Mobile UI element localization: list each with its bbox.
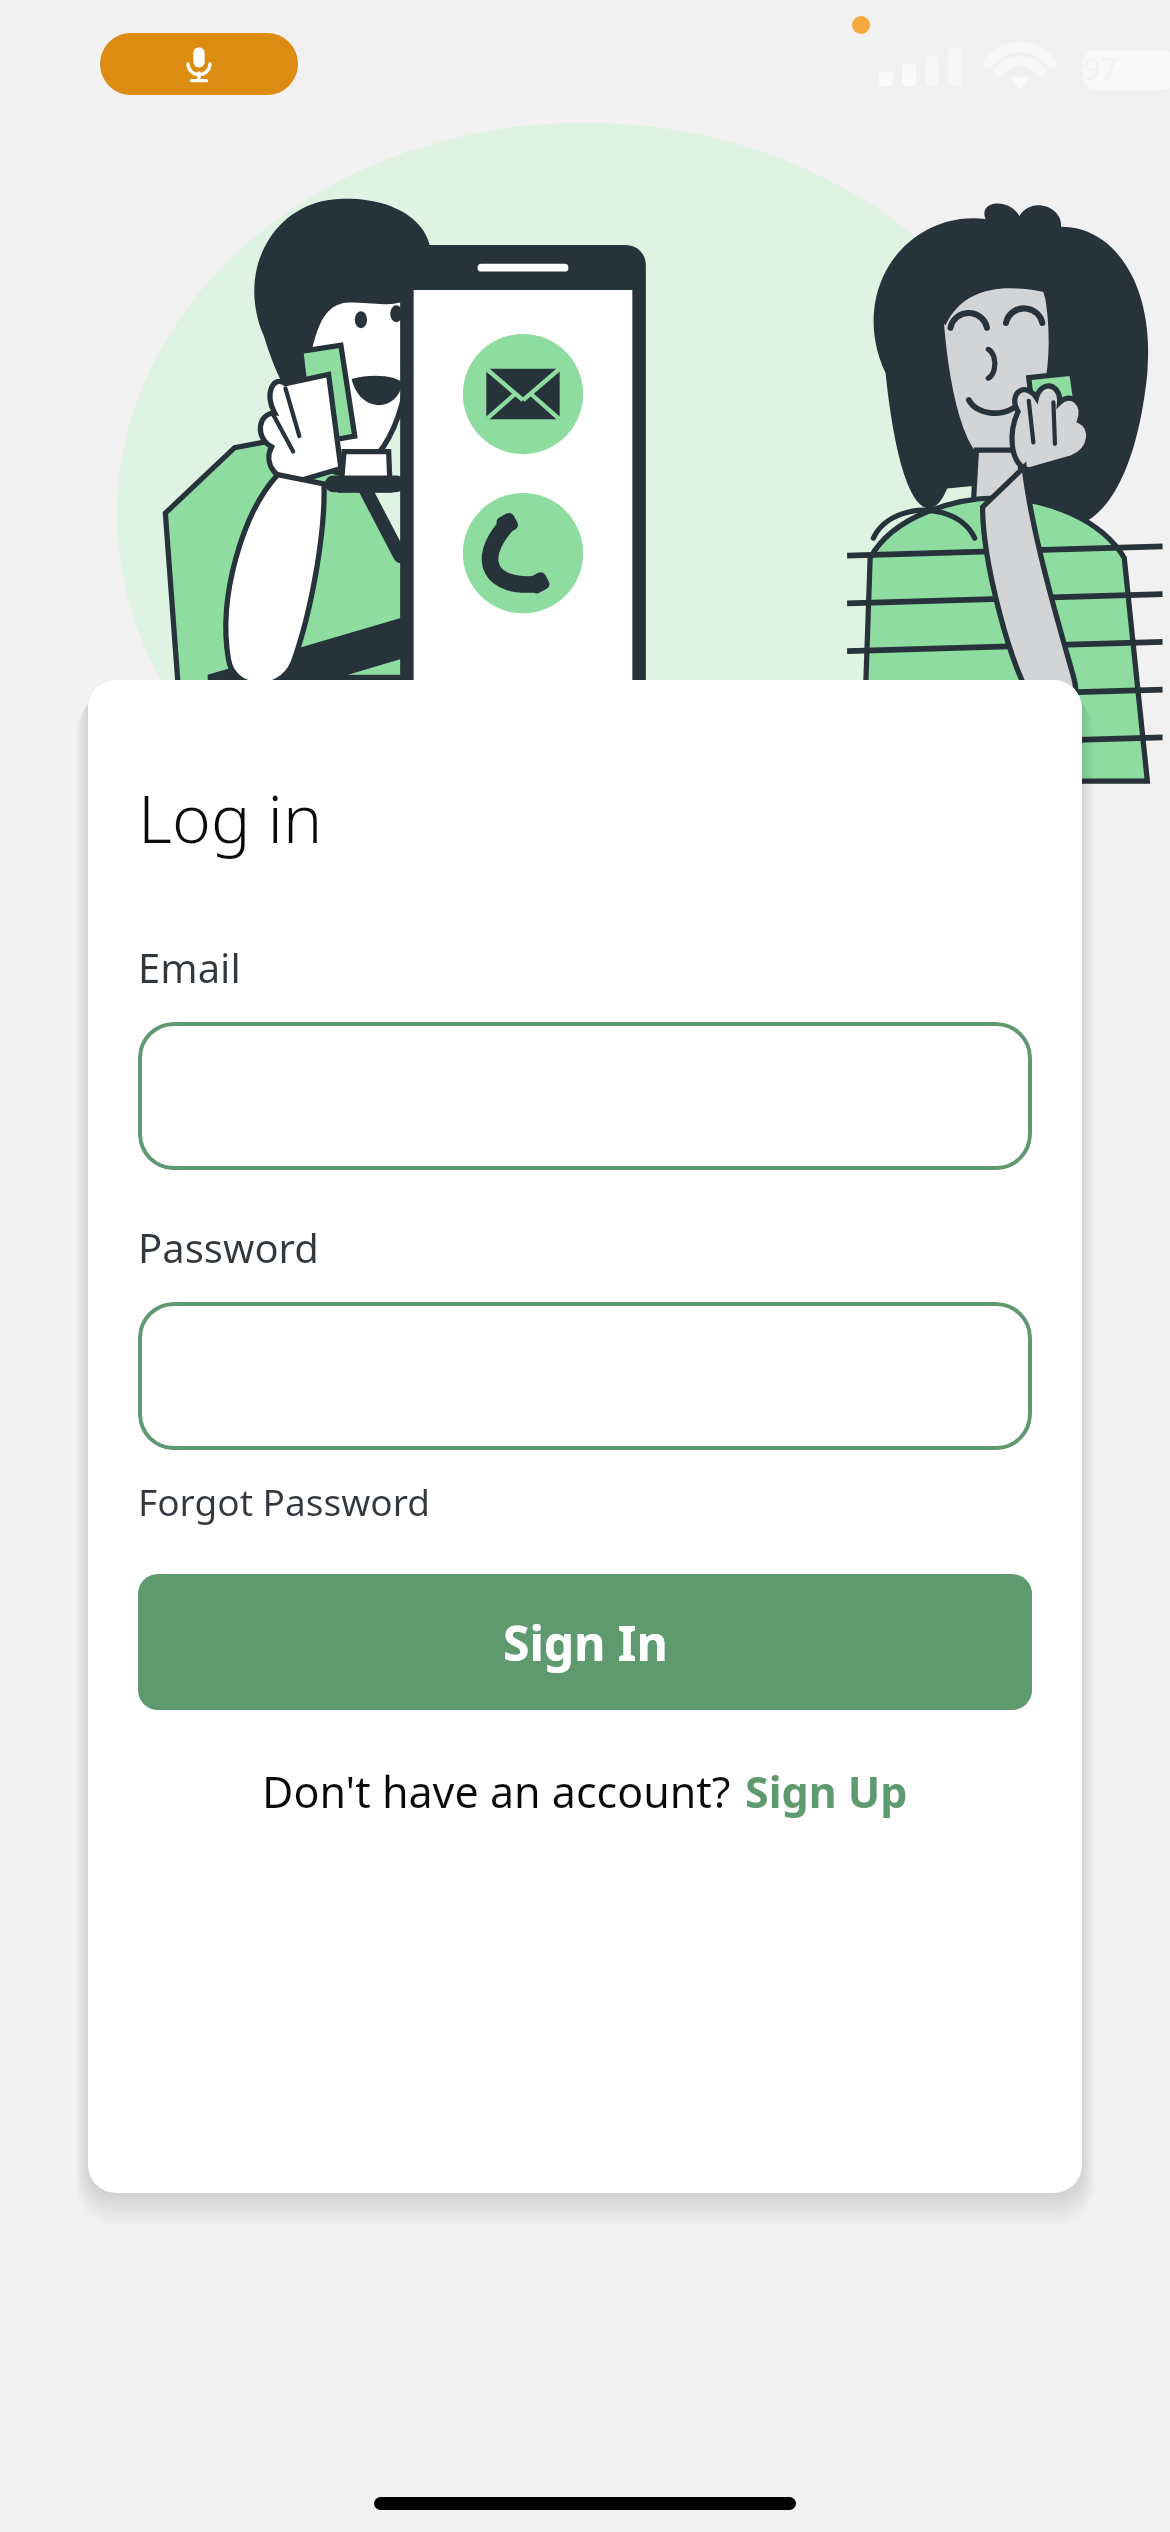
staticText: Sign Up [745,1762,908,1821]
staticText: Sign In [503,1610,668,1675]
button[interactable]: Sign Up [745,1762,908,1821]
staticText: Log in [138,772,323,862]
button[interactable]: Email field [138,1022,1032,1170]
staticText: Don't have an account? [262,1762,731,1821]
staticText: Password [138,1220,319,1274]
button[interactable]: Microphone in use [100,33,298,95]
button[interactable]: Sign In [138,1574,1032,1710]
staticText: Forgot Password [138,1476,430,1526]
button[interactable]: Forgot Password [138,1472,430,1530]
button[interactable]: Password field [138,1302,1032,1450]
staticText: Email [138,940,241,994]
